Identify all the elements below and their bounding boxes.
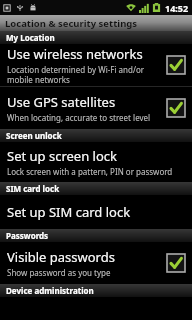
- staticText: Use wireless networks: [7, 45, 143, 63]
- button[interactable]: Toggle checkbox: [166, 98, 186, 118]
- staticText: Set up SIM card lock: [7, 203, 131, 221]
- staticText: Use GPS satellites: [7, 93, 116, 111]
- staticText: SIM card lock: [6, 183, 60, 194]
- staticText: Passwords: [6, 230, 49, 241]
- button[interactable]: Toggle checkbox: [166, 55, 186, 75]
- staticText: Set up screen lock: [7, 147, 118, 165]
- button[interactable]: Use GPS satellites: [0, 87, 192, 129]
- staticText: Visible passwords: [7, 248, 115, 266]
- button[interactable]: Set up SIM card lock: [0, 195, 192, 229]
- staticText: 14:52: [165, 2, 189, 14]
- staticText: When locating, accurate to street level: [7, 112, 151, 123]
- button[interactable]: Visible passwords: [0, 242, 192, 284]
- button[interactable]: Toggle checkbox: [166, 253, 186, 273]
- staticText: My Location: [6, 32, 55, 43]
- button[interactable]: Use wireless networks: [0, 44, 192, 86]
- staticText: Device administration: [6, 285, 94, 296]
- staticText: Location determined by Wi-Fi and/or mobi…: [7, 64, 160, 85]
- staticText: Location & security settings: [5, 17, 138, 30]
- button[interactable]: Set up screen lock: [0, 142, 192, 182]
- staticText: Lock screen with a pattern, PIN or passw…: [7, 166, 173, 177]
- staticText: Screen unlock: [6, 130, 62, 141]
- staticText: Show password as you type: [7, 267, 111, 278]
